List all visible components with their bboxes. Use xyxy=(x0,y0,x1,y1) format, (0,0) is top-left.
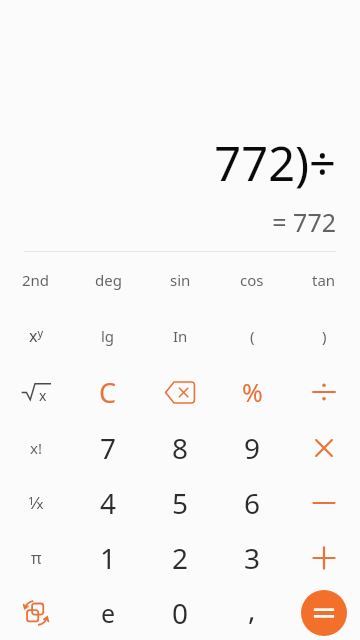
button[interactable]: 3 xyxy=(216,530,288,585)
staticText: 9 xyxy=(244,429,261,467)
staticText: 2nd xyxy=(22,270,50,290)
button[interactable]: Multiply xyxy=(288,420,360,475)
button[interactable]: Square root xyxy=(0,364,72,420)
staticText: C xyxy=(99,374,117,411)
button[interactable]: lg xyxy=(72,308,144,364)
button[interactable]: 5 xyxy=(144,475,216,530)
staticText: 1⁄x xyxy=(28,491,44,514)
button[interactable]: π xyxy=(0,530,72,585)
staticText: x! xyxy=(30,438,42,458)
button[interactable]: ) xyxy=(288,308,360,364)
button[interactable]: Divide xyxy=(288,364,360,420)
button[interactable]: 2 xyxy=(144,530,216,585)
button[interactable]: 0 xyxy=(144,585,216,640)
staticText: cos xyxy=(240,270,264,290)
staticText: In xyxy=(173,326,188,346)
button[interactable]: ln xyxy=(144,308,216,364)
staticText: lg xyxy=(101,326,115,346)
button[interactable]: Plus xyxy=(288,530,360,585)
button[interactable]: 7 xyxy=(72,420,144,475)
staticText: % xyxy=(242,375,263,409)
button[interactable]: 8 xyxy=(144,420,216,475)
button[interactable]: Unit converter xyxy=(0,585,72,640)
button[interactable]: comma xyxy=(216,585,288,640)
button[interactable]: 9 xyxy=(216,420,288,475)
staticText: tan xyxy=(312,270,336,290)
staticText: sin xyxy=(170,270,191,290)
staticText: e xyxy=(101,596,116,630)
button[interactable]: One over x xyxy=(0,475,72,530)
staticText: ( xyxy=(250,326,255,346)
staticText: 3 xyxy=(244,539,261,577)
staticText: 4 xyxy=(100,484,117,522)
button[interactable]: 2nd xyxy=(0,252,72,308)
staticText: 2 xyxy=(172,539,189,577)
staticText: 5 xyxy=(172,484,189,522)
button[interactable]: cos xyxy=(216,252,288,308)
staticText: 772)÷ xyxy=(214,131,336,195)
staticText: π xyxy=(31,547,42,569)
staticText: 1 xyxy=(100,539,117,577)
button[interactable]: e xyxy=(72,585,144,640)
button[interactable]: C xyxy=(72,364,144,420)
staticText: xy xyxy=(29,325,44,347)
staticText: , xyxy=(248,590,256,628)
button[interactable]: % xyxy=(216,364,288,420)
button[interactable]: x! xyxy=(0,420,72,475)
staticText: = 772 xyxy=(272,205,336,239)
button[interactable]: Minus xyxy=(288,475,360,530)
staticText: 0 xyxy=(172,594,189,632)
staticText: 8 xyxy=(172,429,189,467)
button[interactable]: 6 xyxy=(216,475,288,530)
staticText: 6 xyxy=(244,484,261,522)
staticText: ) xyxy=(322,326,327,346)
button[interactable]: Equals xyxy=(301,590,347,636)
button[interactable]: tan xyxy=(288,252,360,308)
button[interactable]: deg xyxy=(72,252,144,308)
staticText: x xyxy=(39,386,47,405)
button[interactable]: sin xyxy=(144,252,216,308)
button[interactable]: Backspace xyxy=(144,364,216,420)
button[interactable]: x to the power of y xyxy=(0,308,72,364)
staticText: deg xyxy=(95,270,122,290)
button[interactable]: ( xyxy=(216,308,288,364)
staticText: 7 xyxy=(100,429,117,467)
button[interactable]: 1 xyxy=(72,530,144,585)
button[interactable]: 4 xyxy=(72,475,144,530)
